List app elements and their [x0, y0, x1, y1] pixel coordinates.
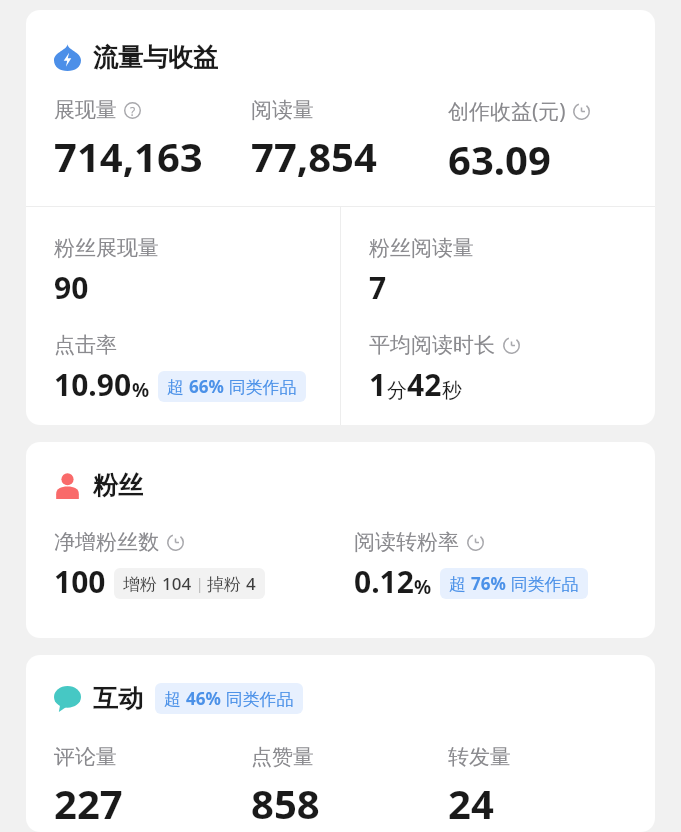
staticText: 66%: [189, 375, 224, 398]
staticText: 4: [246, 572, 256, 595]
staticText: 粉丝阅读量: [369, 235, 474, 261]
staticText: %: [132, 377, 150, 403]
button[interactable]: Fans: [26, 442, 655, 638]
staticText: 858: [251, 776, 320, 830]
staticText: 阅读量: [251, 97, 314, 123]
staticText: |: [192, 574, 207, 593]
staticText: 10.90: [54, 364, 132, 405]
staticText: 0.12: [354, 561, 414, 602]
staticText: 227: [54, 776, 123, 830]
staticText: 42: [407, 364, 442, 405]
staticText: 点赞量: [251, 744, 314, 770]
staticText: 100: [54, 561, 106, 602]
staticText: %: [414, 574, 432, 600]
other: Traffic and revenue: [54, 44, 81, 71]
staticText: 77,854: [251, 129, 377, 183]
staticText: 1: [369, 364, 387, 405]
staticText: 流量与收益: [93, 42, 218, 73]
staticText: 秒: [442, 378, 462, 403]
staticText: 粉丝: [93, 470, 143, 501]
other: Interactions: [54, 685, 81, 712]
staticText: 互动: [93, 683, 143, 714]
staticText: 转发量: [448, 744, 511, 770]
button[interactable]: Interactions: [26, 655, 655, 832]
staticText: 展现量: [54, 97, 117, 123]
staticText: 24: [448, 776, 494, 830]
staticText: 7: [369, 267, 387, 308]
staticText: 同类作品: [224, 375, 297, 398]
staticText: 46%: [186, 687, 221, 710]
staticText: 超: [167, 375, 189, 398]
staticText: 掉粉: [207, 572, 246, 595]
staticText: 超: [449, 572, 471, 595]
staticText: ?: [130, 103, 136, 119]
staticText: 净增粉丝数: [54, 529, 159, 555]
staticText: 平均阅读时长: [369, 332, 495, 358]
staticText: 714,163: [54, 129, 203, 183]
staticText: 90: [54, 267, 89, 308]
button[interactable]: Traffic and revenue: [26, 10, 655, 425]
other: Fans: [54, 472, 81, 499]
staticText: 创作收益(元): [448, 97, 566, 126]
staticText: 63.09: [448, 132, 551, 186]
staticText: 评论量: [54, 744, 117, 770]
staticText: 超: [164, 687, 186, 710]
staticText: 分: [387, 378, 407, 403]
staticText: 同类作品: [221, 687, 294, 710]
staticText: 104: [162, 572, 192, 595]
staticText: 76%: [471, 572, 506, 595]
staticText: 粉丝展现量: [54, 235, 159, 261]
button[interactable]: Help: [124, 102, 141, 119]
staticText: 增粉: [123, 572, 162, 595]
staticText: 阅读转粉率: [354, 529, 459, 555]
staticText: 同类作品: [506, 572, 579, 595]
staticText: 点击率: [54, 332, 117, 358]
